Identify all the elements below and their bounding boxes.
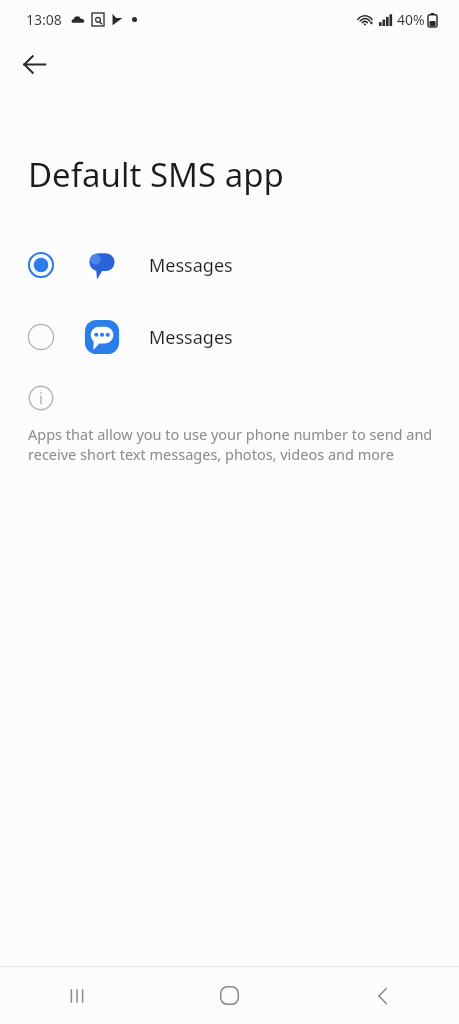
staticText: Messages xyxy=(149,325,233,350)
button[interactable]: Home xyxy=(153,967,306,1024)
button[interactable]: Messages xyxy=(0,241,459,289)
button[interactable]: Messages xyxy=(0,313,459,361)
button[interactable]: Back xyxy=(306,967,459,1024)
staticText: Apps that allow you to use your phone nu… xyxy=(28,424,435,465)
button[interactable]: Recent apps xyxy=(0,967,153,1024)
button[interactable]: Back xyxy=(10,40,58,88)
staticText: Default SMS app xyxy=(28,152,284,197)
staticText: 40% xyxy=(397,10,425,29)
staticText: Messages xyxy=(149,253,233,278)
staticText: 13:08 xyxy=(26,10,62,29)
